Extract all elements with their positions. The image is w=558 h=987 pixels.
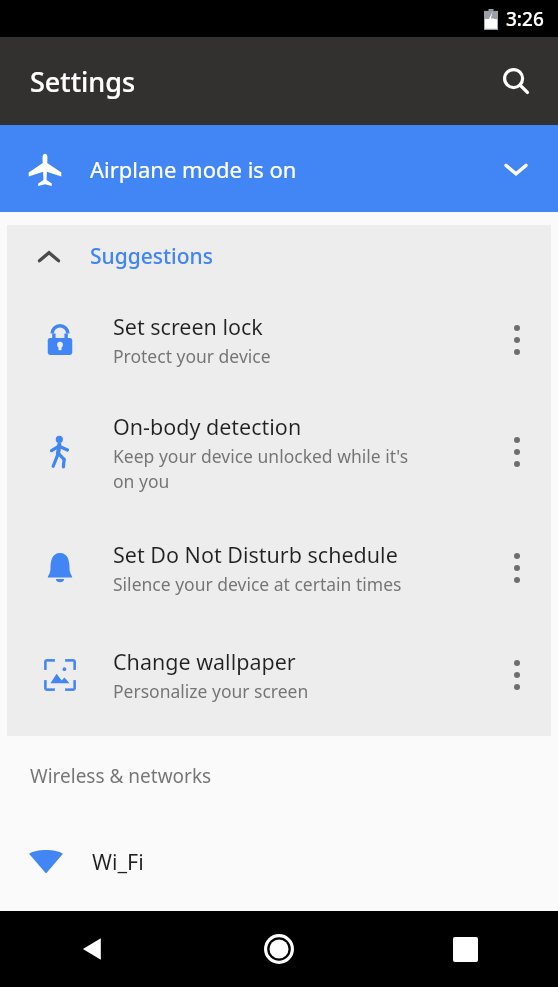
- staticText: Wireless & networks: [30, 763, 212, 789]
- staticText: Personalize your screen: [113, 679, 309, 703]
- staticText: On-body detection: [113, 412, 302, 441]
- button[interactable]: Set Do Not Disturb schedule: [7, 513, 551, 623]
- button[interactable]: On-body detection: [7, 391, 551, 513]
- staticText: Suggestions: [90, 242, 213, 271]
- staticText: Protect your device: [113, 344, 271, 368]
- button[interactable]: Airplane mode is on: [0, 125, 558, 212]
- button[interactable]: Expand: [496, 149, 536, 189]
- button[interactable]: Home: [186, 911, 372, 987]
- button[interactable]: Wi_Fi: [0, 815, 558, 907]
- staticText: 3:26: [506, 6, 544, 32]
- button[interactable]: Suggestions: [7, 225, 551, 288]
- staticText: Keep your device unlocked while it's on …: [113, 444, 409, 493]
- button[interactable]: More options for Screen lock: [483, 288, 551, 391]
- staticText: Change wallpaper: [113, 647, 296, 676]
- button[interactable]: Set screen lock: [7, 288, 551, 391]
- button[interactable]: More options for Wallpaper: [483, 623, 551, 726]
- staticText: Set Do Not Disturb schedule: [113, 540, 398, 569]
- button[interactable]: Recent apps: [372, 911, 558, 987]
- button[interactable]: Back: [0, 911, 186, 987]
- button[interactable]: Change wallpaper: [7, 623, 551, 726]
- staticText: Wi_Fi: [92, 847, 144, 876]
- staticText: Set screen lock: [113, 312, 263, 341]
- button[interactable]: More options for On-body detection: [483, 391, 551, 513]
- button[interactable]: More options for Do Not Disturb: [483, 513, 551, 623]
- staticText: Airplane mode is on: [90, 154, 297, 184]
- button[interactable]: Search: [492, 57, 540, 105]
- staticText: Silence your device at certain times: [113, 572, 402, 596]
- staticText: Settings: [30, 63, 136, 100]
